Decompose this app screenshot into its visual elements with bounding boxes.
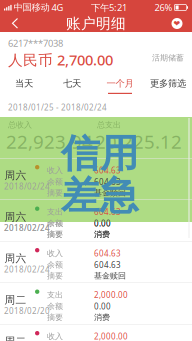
staticText: 余额	[47, 301, 63, 311]
staticText: 604.63	[94, 248, 121, 259]
button[interactable]: 周六	[0, 199, 192, 241]
staticText: 下午5:21	[91, 1, 127, 14]
staticText: 4G	[52, 1, 64, 14]
staticText: 支出	[47, 207, 63, 217]
staticText: 604.63	[94, 176, 121, 187]
staticText: 摘要	[47, 271, 63, 281]
staticText: 基金赎回	[94, 188, 126, 198]
staticText: 七天	[63, 78, 81, 89]
button[interactable]: Favorite	[164, 15, 190, 32]
staticText: ❤	[173, 19, 180, 28]
staticText: 收入	[47, 331, 63, 341]
button[interactable]: 周六	[0, 241, 192, 282]
staticText: 2018/02/20	[4, 305, 50, 316]
staticText: 更多筛选	[150, 78, 186, 89]
staticText: 支出	[47, 207, 63, 217]
staticText: 26%	[154, 1, 172, 14]
staticText: 20,225.12	[95, 129, 182, 154]
staticText: 收入	[47, 165, 63, 175]
button[interactable]: 一个月	[96, 74, 144, 94]
staticText: 604.63	[94, 206, 121, 217]
staticText: 信用	[61, 130, 139, 177]
staticText: 摘要	[47, 312, 63, 322]
staticText: 0.00	[94, 218, 111, 229]
staticText: 消费	[94, 229, 110, 239]
button[interactable]: 当天	[0, 74, 48, 94]
staticText: 余额	[47, 177, 63, 187]
button[interactable]: 七天	[48, 74, 96, 94]
button[interactable]: 周二	[0, 324, 192, 341]
staticText: 收入	[47, 248, 63, 258]
staticText: 余额	[47, 260, 63, 270]
staticText: 消费	[94, 312, 110, 322]
staticText: 22,923.94	[6, 129, 93, 154]
staticText: 2018/02/24	[4, 222, 50, 233]
staticText: 周二	[4, 335, 26, 341]
staticText: 支出	[47, 290, 63, 300]
staticText: 2018/02/24	[4, 181, 50, 192]
staticText: 604.63	[94, 206, 121, 217]
staticText: 2018/02/24	[4, 264, 50, 275]
staticText: 差急	[61, 172, 139, 219]
staticText: 6217***7038	[8, 37, 63, 49]
staticText: 中国移动	[14, 2, 50, 13]
staticText: 总收入	[8, 120, 32, 130]
staticText: 余额	[47, 218, 63, 228]
staticText: 一个月	[106, 78, 133, 89]
button[interactable]: 周六	[0, 199, 192, 241]
staticText: 周六	[4, 210, 26, 224]
staticText: 周二	[4, 293, 26, 307]
staticText: 604.63	[94, 259, 121, 270]
staticText: 摘要	[47, 188, 63, 198]
staticText: 周六	[4, 210, 26, 224]
staticText: 604.63	[94, 165, 121, 176]
staticText: 0.00	[94, 301, 111, 312]
staticText: 摘要	[47, 188, 63, 198]
staticText: 余额	[47, 218, 63, 228]
button[interactable]: 周六	[0, 158, 192, 199]
staticText: 消费	[94, 229, 110, 239]
button[interactable]: 周二	[0, 282, 192, 324]
staticText: 基金赎回	[94, 188, 126, 198]
staticText: 2018/01/25 - 2018/02/24	[8, 102, 107, 113]
staticText: 摘要	[47, 229, 63, 239]
staticText: 摘要	[47, 229, 63, 239]
staticText: 总支出	[97, 120, 121, 130]
button[interactable]: Back	[2, 15, 28, 32]
staticText: 周六	[4, 169, 26, 182]
staticText: 余额	[47, 177, 63, 187]
staticText: 2018/02/24	[4, 222, 50, 233]
staticText: 0.00	[94, 218, 111, 229]
staticText: 周六	[4, 169, 26, 182]
staticText: 账户明细	[66, 14, 126, 32]
staticText: 人民币 2,700.00	[8, 50, 113, 69]
staticText: 2018/02/24	[4, 181, 50, 192]
staticText: 2,000.00	[94, 289, 128, 300]
button[interactable]: 周六	[0, 158, 192, 199]
staticText: 2,000.00	[94, 331, 128, 341]
staticText: 活期储蓄	[152, 53, 184, 63]
staticText: 收入	[47, 165, 63, 175]
staticText: 604.63	[94, 176, 121, 187]
staticText: 周六	[4, 252, 26, 265]
staticText: 基金赎回	[94, 271, 126, 281]
staticText: 604.63	[94, 165, 121, 176]
button[interactable]: 更多筛选	[144, 74, 192, 94]
staticText: 当天	[15, 78, 33, 89]
